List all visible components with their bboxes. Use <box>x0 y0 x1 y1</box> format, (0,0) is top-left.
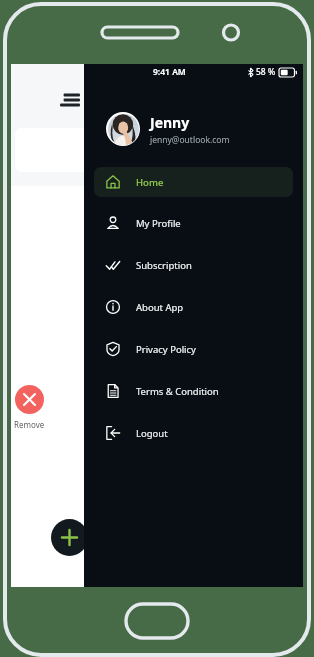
button[interactable]: Remove <box>15 385 44 414</box>
staticText: 9:41 AM <box>153 66 186 78</box>
button[interactable]: Home <box>94 167 293 197</box>
staticText: Home <box>136 176 164 189</box>
staticText: Terms & Condition <box>136 385 219 398</box>
button[interactable]: About App <box>94 293 293 321</box>
staticText: 58 % <box>256 66 276 78</box>
staticText: Logout <box>136 427 168 440</box>
staticText: Subscription <box>136 259 192 272</box>
staticText: Remove <box>14 419 45 430</box>
button[interactable]: Add <box>51 519 88 556</box>
button[interactable]: My Profile <box>94 209 293 237</box>
button[interactable]: Terms & Condition <box>94 377 293 405</box>
button[interactable]: Privacy Policy <box>94 335 293 363</box>
button[interactable]: Jenny <box>106 112 303 146</box>
staticText: Privacy Policy <box>136 343 196 356</box>
button[interactable]: Open navigation menu <box>57 86 83 112</box>
staticText: jenny@outlook.com <box>150 134 230 146</box>
button[interactable]: Subscription <box>94 251 293 279</box>
staticText: Jenny <box>150 113 190 132</box>
button[interactable] <box>15 128 275 172</box>
button[interactable]: Logout <box>94 419 293 447</box>
staticText: My Profile <box>136 217 181 230</box>
staticText: About App <box>136 301 184 314</box>
